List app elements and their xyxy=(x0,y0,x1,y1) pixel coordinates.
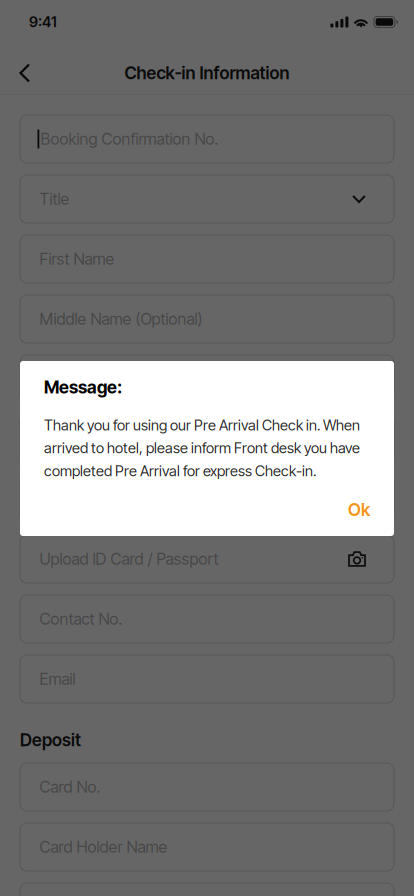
staticText: Message: xyxy=(44,377,122,397)
staticText: Thank you for using our Pre Arrival Chec… xyxy=(44,416,360,479)
staticText: Email xyxy=(39,670,75,688)
staticText: Last Name xyxy=(39,370,113,388)
staticText: Upload ID Card / Passport xyxy=(39,550,218,568)
staticText: 9:41 xyxy=(29,13,57,31)
staticText: Nationality xyxy=(39,430,111,448)
staticText: Check-in Information xyxy=(124,63,289,83)
staticText: Deposit xyxy=(20,730,81,750)
button[interactable]: Ok xyxy=(344,497,374,523)
staticText: Card Holder Name xyxy=(39,838,167,856)
staticText: Title xyxy=(39,190,69,208)
staticText: Ok xyxy=(348,500,370,520)
staticText: First Name xyxy=(39,250,114,268)
staticText: Card No. xyxy=(39,778,100,796)
staticText: Contact No. xyxy=(39,610,122,628)
staticText: Middle Name (Optional) xyxy=(39,310,202,328)
staticText: Booking Confirmation No. xyxy=(40,130,218,148)
button[interactable]: Back xyxy=(2,49,47,97)
